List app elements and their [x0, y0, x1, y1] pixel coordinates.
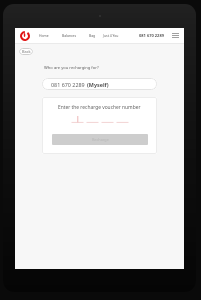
button[interactable]: Home: [39, 33, 49, 38]
staticText: Recharge: [92, 137, 109, 142]
staticText: Just 4 You: [103, 33, 119, 38]
button[interactable]: Who are you recharging for?: [44, 65, 99, 71]
staticText: Home: [39, 33, 49, 38]
staticText: 081 670 2289: [139, 33, 164, 38]
staticText: Balances: [62, 33, 77, 38]
button[interactable]: Balances: [62, 33, 77, 38]
staticText: Back: [22, 49, 31, 54]
button[interactable]: Just 4 You: [103, 33, 119, 38]
staticText: 081 670 2289: [51, 81, 87, 88]
button[interactable]: 081 670 2289: [42, 78, 157, 90]
button[interactable]: Back: [19, 48, 33, 55]
button[interactable]: Menu: [172, 33, 179, 38]
staticText: (Myself): [87, 81, 109, 88]
staticText: Who are you recharging for?: [44, 65, 99, 71]
button[interactable]: Bag: [89, 33, 96, 38]
staticText: Bag: [89, 33, 96, 38]
staticText: Enter the recharge voucher number: [58, 104, 141, 111]
